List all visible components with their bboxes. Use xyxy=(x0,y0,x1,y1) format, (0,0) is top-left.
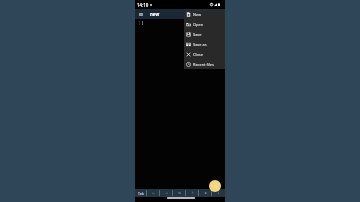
button[interactable]: New xyxy=(184,9,225,19)
staticText: New xyxy=(193,12,202,17)
button[interactable]: Tab xyxy=(135,189,147,197)
staticText: Open xyxy=(193,22,204,27)
button[interactable]: Navigation menu xyxy=(135,9,146,19)
button[interactable]: ↑ xyxy=(186,189,199,197)
staticText: → xyxy=(165,191,168,195)
staticText: Close xyxy=(193,52,203,57)
staticText: ↹ xyxy=(178,191,181,195)
button[interactable]: Open xyxy=(184,19,225,29)
staticText: ← xyxy=(152,191,155,195)
staticText: ▪ xyxy=(204,191,207,195)
staticText: new xyxy=(150,11,160,17)
button[interactable]: → xyxy=(160,189,173,197)
staticText: Save as xyxy=(193,42,207,47)
button[interactable]: Save xyxy=(184,29,225,39)
button[interactable]: Save as xyxy=(184,39,225,49)
button[interactable]: ← xyxy=(147,189,160,197)
button[interactable]: New file xyxy=(209,180,221,192)
button[interactable]: Recent files xyxy=(184,59,225,69)
button[interactable]: ↹ xyxy=(173,189,186,197)
button[interactable]: Close xyxy=(184,49,225,59)
staticText: 14:19 xyxy=(137,2,149,8)
button[interactable]: ▪ xyxy=(199,189,212,197)
staticText: Tab xyxy=(138,191,144,196)
button[interactable]: ↓ xyxy=(212,189,225,197)
staticText: ↓ xyxy=(217,191,220,195)
staticText: ↑ xyxy=(191,191,194,195)
staticText: Save xyxy=(193,32,202,37)
staticText: Recent files xyxy=(193,62,214,67)
staticText: 1 xyxy=(138,20,141,26)
